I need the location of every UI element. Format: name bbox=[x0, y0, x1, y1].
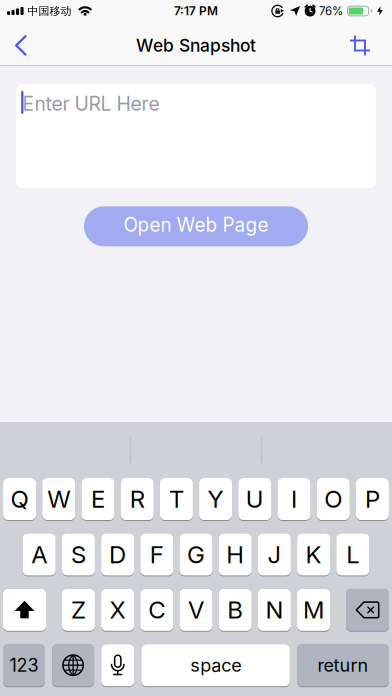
button[interactable]: C bbox=[140, 589, 173, 632]
button[interactable]: Next keyboard bbox=[52, 644, 94, 687]
button[interactable]: I bbox=[277, 478, 310, 521]
button[interactable]: Open Web Page bbox=[84, 206, 308, 246]
button[interactable]: M bbox=[297, 589, 330, 632]
staticText: P bbox=[365, 484, 380, 513]
button[interactable]: Back bbox=[0, 24, 39, 67]
button[interactable]: N bbox=[258, 589, 291, 632]
button[interactable]: Crop bbox=[338, 24, 392, 67]
staticText: space bbox=[190, 654, 241, 676]
staticText: G bbox=[187, 540, 205, 569]
staticText: 123 bbox=[9, 654, 38, 676]
staticText: Enter URL Here bbox=[22, 92, 159, 115]
button[interactable]: E bbox=[81, 478, 114, 521]
staticText: return bbox=[317, 654, 368, 676]
staticText: Q bbox=[11, 484, 29, 513]
staticText: U bbox=[246, 484, 264, 513]
button[interactable]: D bbox=[101, 533, 134, 576]
button[interactable]: W bbox=[42, 478, 75, 521]
staticText: R bbox=[130, 484, 145, 513]
button[interactable]: O bbox=[317, 478, 350, 521]
button[interactable]: U bbox=[238, 478, 271, 521]
staticText: J bbox=[267, 540, 281, 569]
button[interactable]: Shift bbox=[3, 589, 46, 632]
button[interactable]: R bbox=[121, 478, 154, 521]
staticText: K bbox=[306, 540, 322, 569]
button[interactable]: J bbox=[258, 533, 291, 576]
button[interactable]: space bbox=[141, 644, 290, 687]
staticText: W bbox=[47, 484, 70, 513]
staticText: 中国移动 bbox=[28, 4, 72, 18]
button[interactable]: F bbox=[140, 533, 173, 576]
staticText: S bbox=[71, 540, 86, 569]
button[interactable]: V bbox=[179, 589, 212, 632]
button[interactable]: Dictation bbox=[101, 644, 134, 687]
staticText: M bbox=[303, 595, 324, 624]
staticText: Z bbox=[71, 595, 86, 624]
staticText: A bbox=[31, 540, 47, 569]
staticText: I bbox=[291, 484, 297, 513]
staticText: C bbox=[148, 595, 165, 624]
staticText: N bbox=[265, 595, 283, 624]
staticText: Web Snapshot bbox=[136, 35, 256, 56]
button[interactable]: P bbox=[356, 478, 389, 521]
button[interactable]: Delete bbox=[346, 589, 389, 632]
button[interactable]: Numbers bbox=[3, 644, 45, 687]
staticText: O bbox=[324, 484, 342, 513]
staticText: Y bbox=[208, 484, 224, 513]
staticText: X bbox=[110, 595, 126, 624]
button[interactable]: T bbox=[160, 478, 193, 521]
button[interactable]: S bbox=[62, 533, 95, 576]
staticText: H bbox=[226, 540, 244, 569]
button[interactable]: B bbox=[219, 589, 252, 632]
staticText: B bbox=[227, 595, 243, 624]
button[interactable]: Z bbox=[62, 589, 95, 632]
staticText: T bbox=[169, 484, 184, 513]
button[interactable]: URL text field bbox=[16, 84, 376, 188]
staticText: 76% bbox=[319, 4, 343, 18]
staticText: F bbox=[150, 540, 164, 569]
staticText: D bbox=[109, 540, 126, 569]
button[interactable]: return bbox=[297, 644, 389, 687]
button[interactable]: G bbox=[179, 533, 212, 576]
button[interactable]: A bbox=[23, 533, 56, 576]
staticText: E bbox=[91, 484, 105, 513]
button[interactable]: L bbox=[336, 533, 369, 576]
staticText: L bbox=[346, 540, 359, 569]
button[interactable]: Q bbox=[3, 478, 36, 521]
staticText: Open Web Page bbox=[123, 213, 268, 236]
button[interactable]: H bbox=[219, 533, 252, 576]
staticText: V bbox=[188, 595, 204, 624]
button[interactable]: X bbox=[101, 589, 134, 632]
staticText: 7:17 PM bbox=[174, 4, 218, 18]
button[interactable]: Y bbox=[199, 478, 232, 521]
button[interactable]: K bbox=[297, 533, 330, 576]
